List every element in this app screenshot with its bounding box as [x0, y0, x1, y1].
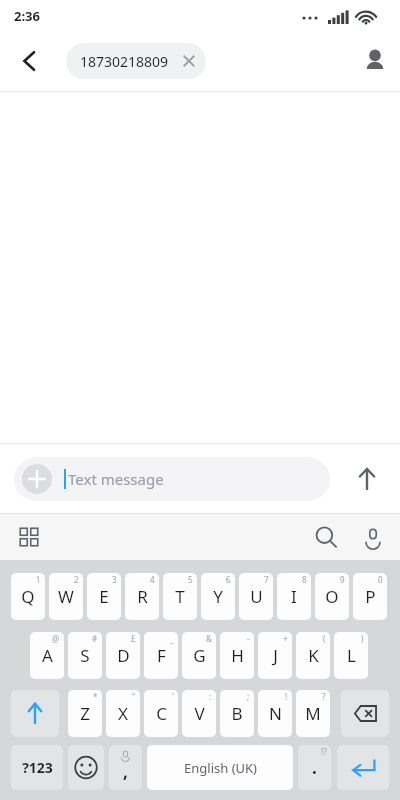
button[interactable]: L — [334, 632, 368, 679]
button[interactable]: Keyboard options — [12, 522, 46, 552]
staticText: A — [42, 644, 53, 667]
button[interactable]: O — [315, 573, 349, 620]
button[interactable]: Voice input — [358, 522, 388, 552]
button[interactable]: F — [144, 632, 178, 679]
staticText: !? — [321, 746, 327, 757]
button[interactable]: P — [353, 573, 387, 620]
button[interactable]: D — [106, 632, 140, 679]
staticText: G — [193, 644, 206, 667]
button[interactable]: Shift — [11, 690, 59, 737]
staticText: ?123 — [22, 758, 53, 777]
button[interactable]: Emoji — [68, 745, 104, 790]
button[interactable]: V — [182, 690, 216, 737]
button[interactable]: Add attachment — [14, 457, 330, 501]
button[interactable]: Z — [68, 690, 102, 737]
staticText: ! — [285, 691, 288, 702]
button[interactable]: M — [296, 690, 330, 737]
staticText: N — [269, 702, 282, 725]
staticText: D — [117, 644, 130, 667]
button[interactable]: . — [298, 745, 331, 790]
button[interactable]: N — [258, 690, 292, 737]
button[interactable]: U — [239, 573, 273, 620]
button[interactable]: Y — [201, 573, 235, 620]
other: Remove recipient — [182, 54, 196, 68]
staticText: ) — [361, 633, 364, 644]
staticText: U — [250, 585, 263, 608]
staticText: ' — [172, 691, 174, 702]
button[interactable]: S — [68, 632, 102, 679]
staticText: F — [157, 644, 166, 667]
button[interactable]: Search — [310, 522, 342, 552]
staticText: I — [291, 585, 297, 608]
staticText: 6 — [226, 574, 231, 585]
staticText: 7 — [264, 574, 269, 585]
button[interactable]: G — [182, 632, 216, 679]
staticText: . — [312, 756, 317, 779]
button[interactable]: 18730218809 — [66, 43, 206, 79]
staticText: O — [325, 585, 339, 608]
staticText: X — [118, 702, 128, 725]
staticText: B — [231, 702, 243, 725]
button[interactable]: Q — [11, 573, 45, 620]
staticText: C — [156, 702, 167, 725]
staticText: S — [80, 644, 90, 667]
staticText: 1 — [36, 574, 41, 585]
staticText: Q — [21, 585, 35, 608]
staticText: L — [347, 644, 356, 667]
staticText: 2 — [74, 574, 79, 585]
staticText: E — [99, 585, 109, 608]
staticText: * — [93, 691, 98, 702]
staticText: ; — [247, 691, 250, 702]
staticText: 3 — [112, 574, 117, 585]
button[interactable]: K — [296, 632, 330, 679]
button[interactable]: W — [49, 573, 83, 620]
staticText: H — [231, 644, 244, 667]
button[interactable]: Add attachment — [22, 464, 52, 494]
button[interactable]: Send — [346, 458, 388, 500]
button[interactable]: Contacts — [355, 41, 395, 81]
staticText: R — [137, 585, 148, 608]
staticText: ( — [323, 633, 326, 644]
staticText: 9 — [340, 574, 345, 585]
button[interactable]: X — [106, 690, 140, 737]
staticText: - — [247, 633, 250, 644]
button[interactable]: T — [163, 573, 197, 620]
staticText: _ — [170, 633, 174, 644]
button[interactable]: English (UK) — [147, 745, 293, 790]
staticText: T — [175, 585, 185, 608]
staticText: : — [209, 691, 212, 702]
staticText: 4 — [150, 574, 155, 585]
staticText: @ — [52, 633, 60, 644]
button[interactable]: ?123 — [11, 745, 63, 790]
button[interactable]: Back — [10, 41, 50, 81]
button[interactable]: C — [144, 690, 178, 737]
staticText: & — [206, 633, 212, 644]
staticText: 18730218809 — [80, 52, 169, 71]
button[interactable]: I — [277, 573, 311, 620]
button[interactable]: , — [109, 745, 142, 790]
button[interactable]: J — [258, 632, 292, 679]
staticText: V — [194, 702, 205, 725]
button[interactable]: Backspace — [341, 690, 389, 737]
staticText: " — [132, 691, 136, 702]
staticText: M — [305, 702, 321, 725]
button[interactable]: H — [220, 632, 254, 679]
button[interactable]: R — [125, 573, 159, 620]
staticText: P — [365, 585, 376, 608]
staticText: ? — [322, 691, 326, 702]
staticText: 2:36 — [14, 7, 40, 25]
staticText: English (UK) — [184, 759, 257, 777]
button[interactable]: Enter — [337, 745, 389, 790]
button[interactable]: E — [87, 573, 121, 620]
staticText: 0 — [378, 574, 383, 585]
staticText: # — [92, 633, 98, 644]
staticText: K — [308, 644, 319, 667]
button[interactable]: A — [30, 632, 64, 679]
staticText: 5 — [188, 574, 193, 585]
staticText: Y — [213, 585, 223, 608]
staticText: £ — [131, 633, 136, 644]
staticText: Text message — [68, 469, 164, 489]
staticText: J — [273, 644, 278, 667]
staticText: W — [58, 585, 74, 608]
button[interactable]: B — [220, 690, 254, 737]
